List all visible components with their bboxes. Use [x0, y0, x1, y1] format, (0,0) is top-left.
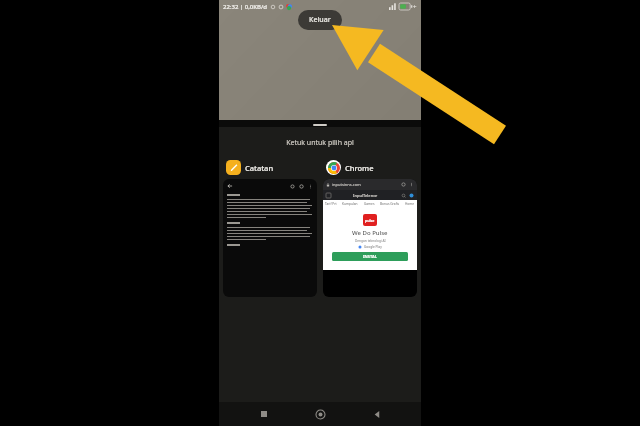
staticText: +: [413, 3, 417, 11]
button[interactable]: INSTAL: [332, 252, 408, 261]
staticText: Kumpulan: [342, 202, 358, 206]
staticText: Keluar: [309, 15, 331, 25]
staticText: inputsinns.com: [332, 182, 361, 187]
staticText: 22:32 | 0,0KB/d: [223, 3, 268, 11]
staticText: We Do Pulse: [352, 229, 388, 237]
staticText: Home: [405, 202, 415, 206]
staticText: Google Play: [364, 245, 382, 249]
button[interactable]: Chrome: [323, 160, 417, 297]
button[interactable]: Recents: [252, 402, 276, 426]
button[interactable]: Back: [365, 402, 389, 426]
button[interactable]: Keluar: [298, 10, 342, 30]
button[interactable]: Home: [308, 402, 332, 426]
staticText: Games: [364, 202, 375, 206]
staticText: pulse: [365, 218, 375, 223]
staticText: Chrome: [345, 163, 374, 173]
staticText: InpulTelenor: [353, 193, 378, 198]
staticText: Tarif Prt: [325, 202, 337, 206]
staticText: Bonus Grafis: [380, 202, 400, 206]
staticText: Ketuk untuk pilih apl: [219, 138, 421, 148]
staticText: Dengan teknologi AI: [355, 239, 386, 243]
staticText: Catatan: [245, 163, 274, 173]
button[interactable]: Catatan: [223, 160, 317, 297]
staticText: INSTAL: [363, 254, 378, 259]
